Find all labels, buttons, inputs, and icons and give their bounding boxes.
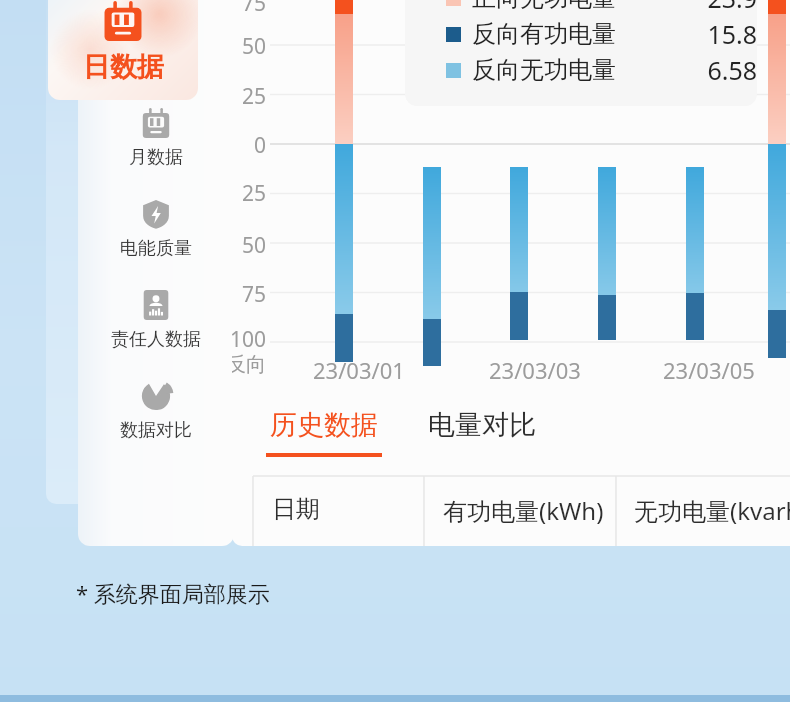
staticText: 日期 xyxy=(272,494,320,524)
staticText: 历史数据 xyxy=(270,408,378,442)
staticText: 正向无功电量 xyxy=(472,0,616,13)
staticText: 电量对比 xyxy=(428,408,536,442)
staticText: 25 xyxy=(232,82,266,111)
staticText: 0 xyxy=(232,131,266,160)
button[interactable]: 反向无功电量 xyxy=(446,52,757,88)
button[interactable]: 电量对比 xyxy=(428,408,536,442)
staticText: 责任人数据 xyxy=(111,328,201,351)
staticText: 75 xyxy=(232,0,266,18)
staticText: 23/03/01 xyxy=(313,355,405,385)
button[interactable]: 月数据 xyxy=(78,108,234,169)
button[interactable]: 责任人数据 xyxy=(78,290,234,351)
staticText: 日数据 xyxy=(83,50,164,84)
staticText: 有功电量(kWh) xyxy=(443,494,604,527)
staticText: * 系统界面局部展示 xyxy=(76,578,270,608)
button[interactable]: 正向无功电量 xyxy=(446,0,757,16)
staticText: 反向有功电量 xyxy=(472,19,616,49)
staticText: 无功电量(kvarh) xyxy=(634,494,790,527)
staticText: 6.58 xyxy=(616,53,757,87)
staticText: 75 xyxy=(232,280,266,309)
staticText: 反向无功电量 xyxy=(472,55,616,85)
staticText: 电能质量 xyxy=(120,237,192,260)
button[interactable]: 电能质量 xyxy=(78,199,234,260)
button[interactable]: 日数据 xyxy=(48,0,198,100)
button[interactable]: 反向有功电量 xyxy=(446,16,757,52)
button[interactable]: 历史数据 xyxy=(266,408,382,457)
staticText: 23/03/03 xyxy=(489,355,581,385)
staticText: 23/03/05 xyxy=(663,355,755,385)
staticText: 反向 xyxy=(232,352,266,377)
staticText: 23.9 xyxy=(616,0,757,15)
staticText: 50 xyxy=(232,231,266,260)
staticText: 数据对比 xyxy=(120,419,192,442)
staticText: 100 xyxy=(232,325,266,354)
staticText: 15.8 xyxy=(616,17,757,51)
staticText: 月数据 xyxy=(129,146,183,169)
button[interactable]: 数据对比 xyxy=(78,381,234,442)
staticText: 50 xyxy=(232,32,266,61)
staticText: 25 xyxy=(232,179,266,208)
